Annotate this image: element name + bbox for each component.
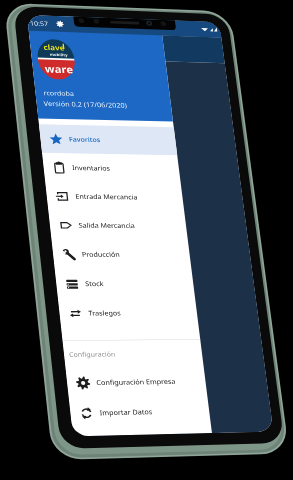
button[interactable]: Inventarios <box>0 284 250 342</box>
staticText: clave <box>24 56 63 76</box>
button[interactable]: Favoritos <box>0 226 250 284</box>
staticText: Versión 0.2 (17/06/2020) <box>13 174 167 192</box>
button[interactable]: Salida Mercancia <box>0 400 250 458</box>
staticText: mobility <box>34 75 68 86</box>
staticText: 10:57 <box>4 8 38 26</box>
staticText: Entrada Mercancia <box>52 362 166 380</box>
staticText: ware <box>22 97 75 126</box>
staticText: Favoritos <box>52 246 110 264</box>
staticText: rcordoba <box>15 152 71 170</box>
button[interactable]: Entrada Mercancia <box>0 342 250 400</box>
other: Settings <box>52 9 67 24</box>
button[interactable]: Producción <box>0 458 250 480</box>
staticText: Salida Mercancia <box>52 420 155 438</box>
staticText: Inventarios <box>52 304 122 322</box>
